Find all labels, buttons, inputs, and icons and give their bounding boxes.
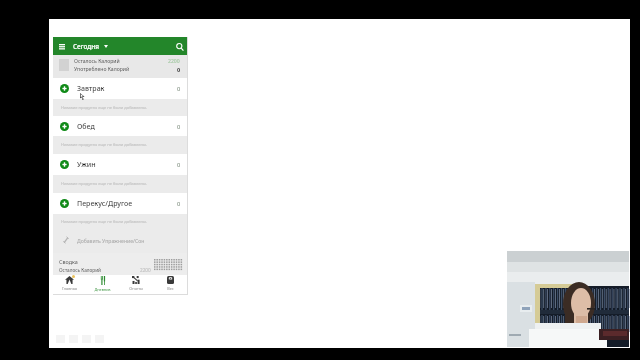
button[interactable]: Добавить Упражнение/Сон	[53, 230, 187, 253]
staticText: Употреблено Калорий	[74, 66, 130, 73]
button[interactable]: Ужин	[53, 154, 187, 175]
staticText: Никакие продукты еще не были добавлены.	[61, 142, 148, 147]
button[interactable]: Отчеты	[119, 275, 153, 294]
staticText: Сегодня	[73, 42, 99, 51]
button[interactable]: Главная	[53, 275, 86, 294]
button[interactable]: Перекус/Другое	[53, 193, 187, 214]
staticText: Осталось Калорий	[59, 267, 101, 273]
staticText: Перекус/Другое	[77, 199, 133, 209]
button[interactable]: Search	[173, 40, 186, 53]
button[interactable]: Обед	[53, 116, 187, 136]
staticText: Отчеты	[129, 286, 143, 291]
staticText: 2200	[168, 58, 180, 65]
staticText: Дневник	[94, 287, 111, 292]
button[interactable]: Сводка	[53, 253, 187, 275]
staticText: Никакие продукты еще не были добавлены.	[61, 105, 148, 110]
button[interactable]: Завтрак	[53, 78, 187, 99]
button[interactable]: Вес	[153, 275, 187, 294]
button[interactable]: Open navigation menu	[56, 40, 68, 52]
staticText: 0	[177, 123, 181, 131]
staticText: 0	[177, 66, 181, 74]
staticText: 2200	[140, 267, 151, 273]
staticText: Главная	[62, 286, 77, 291]
staticText: Добавить Упражнение/Сон	[77, 238, 145, 245]
staticText: Вес	[167, 286, 174, 291]
button[interactable]: Дневник	[86, 275, 119, 294]
staticText: Никакие продукты еще не были добавлены.	[61, 219, 148, 224]
staticText: Завтрак	[77, 84, 105, 94]
staticText: 0	[177, 161, 181, 169]
staticText: Обед	[77, 122, 95, 132]
staticText: Осталось Калорий	[74, 58, 120, 65]
staticText: Сводка	[59, 258, 78, 265]
staticText: Ужин	[77, 160, 96, 170]
staticText: 0	[177, 200, 181, 208]
staticText: 0	[177, 85, 181, 93]
staticText: Никакие продукты еще не были добавлены.	[61, 181, 148, 186]
